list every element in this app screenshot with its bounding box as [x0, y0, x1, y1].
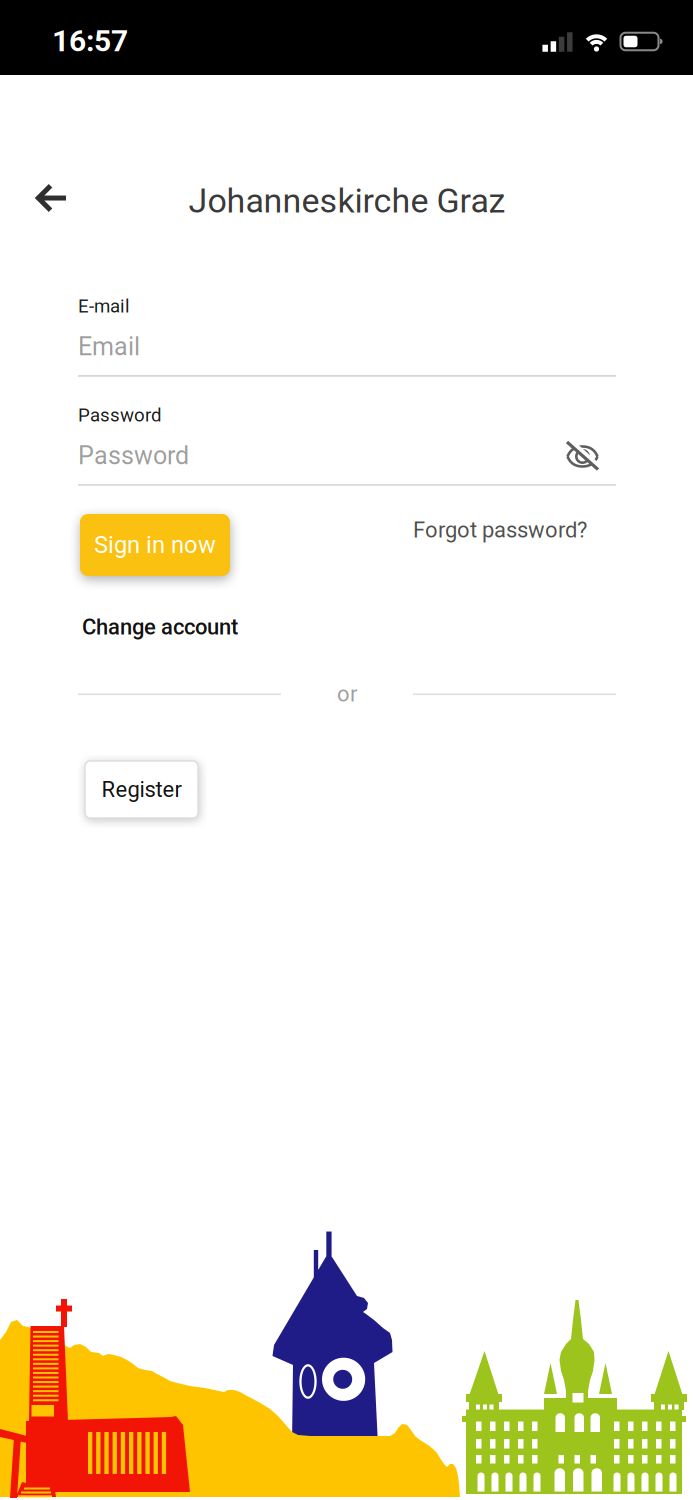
button[interactable]: Show password [556, 433, 609, 479]
staticText: Password [78, 441, 189, 470]
staticText: Forgot password? [413, 517, 587, 543]
staticText: Email [78, 332, 140, 361]
button[interactable]: Sign in now [80, 514, 230, 576]
staticText: Johanneskirche Graz [188, 181, 505, 221]
staticText: or [337, 681, 357, 707]
button[interactable]: Password [78, 430, 616, 486]
staticText: Register [101, 777, 181, 802]
button[interactable]: Email [78, 321, 616, 377]
button[interactable]: Forgot password? [407, 511, 593, 549]
staticText: Sign in now [94, 531, 216, 559]
staticText: Change account [82, 614, 238, 640]
staticText: E-mail [78, 295, 130, 317]
staticText: 16:57 [52, 23, 128, 59]
button[interactable]: Back [22, 170, 82, 226]
staticText: Password [78, 404, 162, 426]
button[interactable]: Change account [76, 608, 244, 646]
button[interactable]: Register [85, 761, 198, 818]
